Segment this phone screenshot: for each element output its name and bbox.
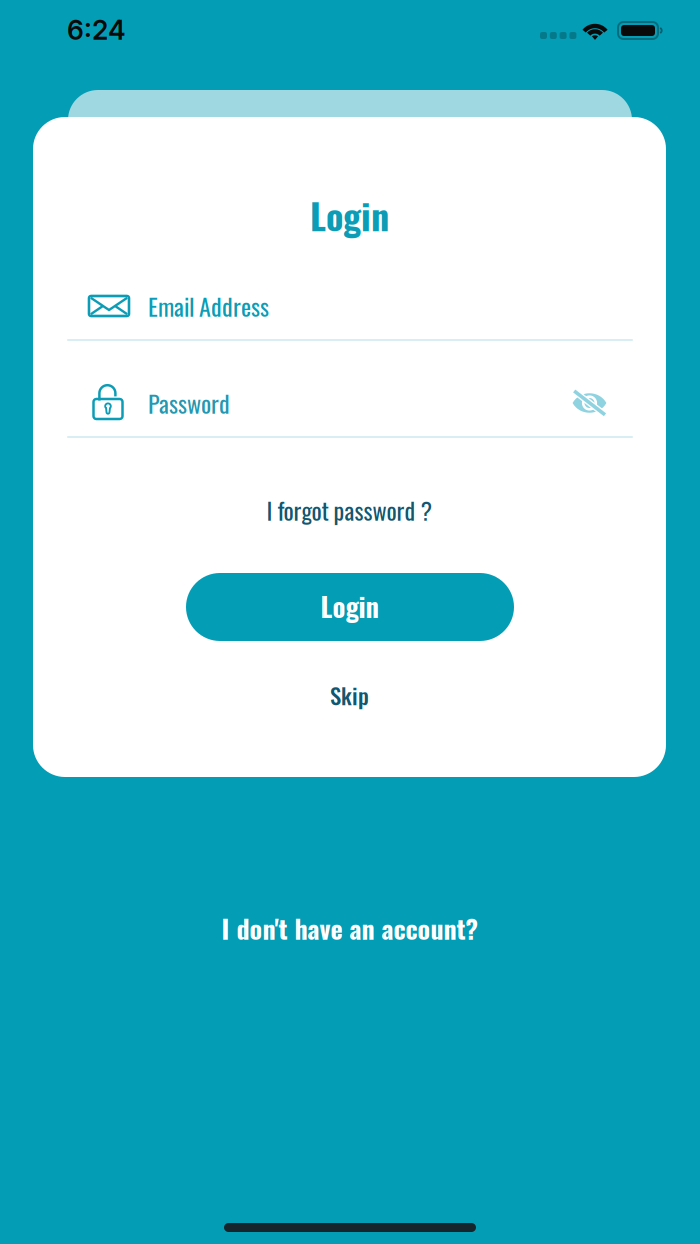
staticText: Skip [330, 678, 369, 712]
button[interactable]: Login [186, 573, 514, 641]
staticText: I forgot password ? [266, 492, 432, 528]
staticText: Login [310, 188, 389, 242]
button[interactable]: I don't have an account? [0, 901, 700, 955]
staticText: Email Address [148, 288, 269, 324]
button[interactable]: I forgot password ? [33, 490, 666, 530]
button[interactable]: Skip [33, 676, 666, 714]
staticText: Password [148, 385, 230, 421]
staticText: 6:24 [67, 14, 126, 46]
staticText: I don't have an account? [221, 909, 478, 947]
button[interactable]: Show password [560, 378, 619, 428]
staticText: Login [320, 586, 379, 626]
